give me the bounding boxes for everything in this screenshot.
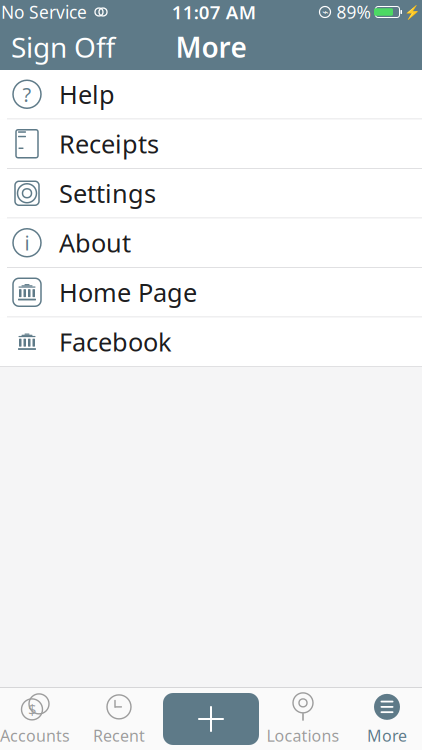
staticText: Accounts [0,725,70,746]
button[interactable]: i [0,218,422,268]
button[interactable]: $ [0,119,422,169]
staticText: Settings [59,176,156,210]
staticText: More [175,28,246,66]
staticText: $ [28,700,36,719]
staticText: 11:07 AM [172,0,256,24]
button[interactable]: Facebook [0,317,422,367]
staticText: Receipts [59,127,159,160]
staticText: Facebook [59,325,172,358]
staticText: i [24,229,29,256]
button[interactable]: Sign Off [0,24,129,70]
staticText: ⌁ [322,6,328,18]
staticText: Sign Off [11,28,115,66]
staticText: Recent [93,725,145,746]
staticText: Help [59,77,115,111]
button[interactable]: Recent [77,690,161,748]
staticText: ? [22,81,31,108]
staticText: ⚡ [404,4,421,20]
staticText: Home Page [59,275,197,309]
button[interactable]: Locations [261,690,345,748]
button[interactable]: ? [0,70,422,119]
button[interactable]: Add [161,690,261,748]
staticText: Locations [266,725,339,746]
staticText: More [367,725,407,746]
button[interactable]: $ [0,690,77,748]
staticText: No Service [1,0,87,23]
button[interactable]: More [345,690,422,748]
staticText: About [59,226,131,259]
button[interactable]: Settings [0,169,422,218]
staticText: 89% [336,0,370,23]
button[interactable]: Home Page [0,268,422,317]
